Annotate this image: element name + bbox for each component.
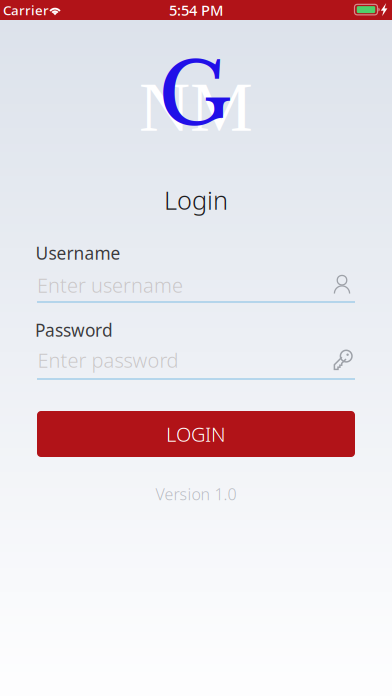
staticText: Password <box>35 318 113 341</box>
staticText: Carrier <box>3 1 49 19</box>
staticText: Enter password <box>37 347 178 373</box>
staticText: LOGIN <box>166 421 226 447</box>
button[interactable]: LOGIN <box>37 411 355 457</box>
staticText: 5:54 PM <box>169 0 223 20</box>
staticText: G <box>158 42 232 148</box>
staticText: Enter username <box>37 272 183 298</box>
staticText: Login <box>164 183 228 217</box>
staticText: Username <box>35 241 120 264</box>
staticText: NM <box>139 68 253 146</box>
staticText: Version 1.0 <box>155 483 236 505</box>
